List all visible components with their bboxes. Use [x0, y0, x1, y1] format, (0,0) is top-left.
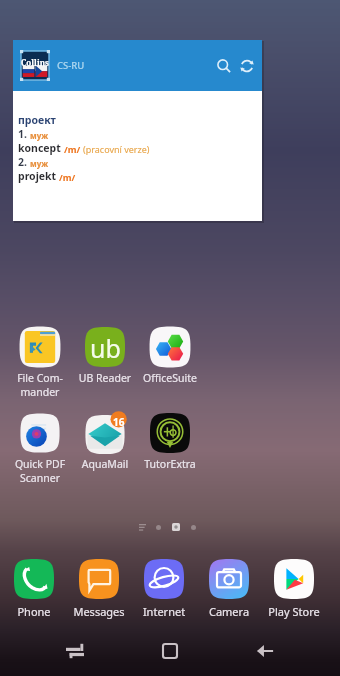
button[interactable]: Phone [1, 559, 67, 625]
button[interactable]: Camera [196, 559, 262, 625]
button[interactable]: Messages [66, 559, 132, 625]
staticText: 2. [18, 155, 30, 169]
staticText: Camera [196, 604, 262, 619]
button[interactable]: TutorExtra [137, 411, 203, 489]
button[interactable]: Search [213, 55, 235, 77]
staticText: проект [18, 113, 56, 127]
staticText: Internet [131, 604, 197, 619]
staticText: OfficeSuite [137, 371, 203, 385]
staticText: UB Reader [72, 371, 138, 385]
staticText: projekt [18, 169, 59, 183]
staticText: Play Store [261, 604, 327, 619]
staticText: Quick PDF Scanner [7, 457, 73, 485]
button[interactable]: Internet [131, 559, 197, 625]
button[interactable]: 16 [72, 411, 138, 489]
button[interactable]: Recents [47, 628, 103, 674]
staticText: Collins [21, 57, 49, 68]
button[interactable]: Play Store [261, 559, 327, 625]
staticText: TutorExtra [137, 457, 203, 471]
staticText: koncept [18, 141, 64, 155]
staticText: CS-RU [57, 59, 85, 72]
staticText: муж [30, 130, 49, 141]
button[interactable]: Back [237, 628, 293, 674]
button[interactable]: Refresh [236, 55, 258, 77]
button[interactable]: Collins [13, 40, 262, 221]
staticText: (pracovní verze) [83, 143, 150, 155]
staticText: 16 [113, 415, 125, 429]
button[interactable]: Quick PDF Scanner [7, 411, 73, 489]
staticText: Messages [66, 604, 132, 619]
staticText: File Com- mander [7, 371, 73, 399]
button[interactable]: File Com- mander [7, 325, 73, 403]
button[interactable]: Home [142, 628, 198, 674]
staticText: AquaMail [72, 457, 138, 471]
button[interactable]: OfficeSuite [137, 325, 203, 403]
staticText: /m/ [59, 171, 76, 183]
staticText: 1. [18, 127, 30, 141]
staticText: ub [90, 331, 121, 365]
staticText: муж [30, 158, 49, 169]
staticText: Phone [1, 604, 67, 619]
button[interactable]: ub [72, 325, 138, 403]
staticText: /m/ [64, 143, 83, 155]
